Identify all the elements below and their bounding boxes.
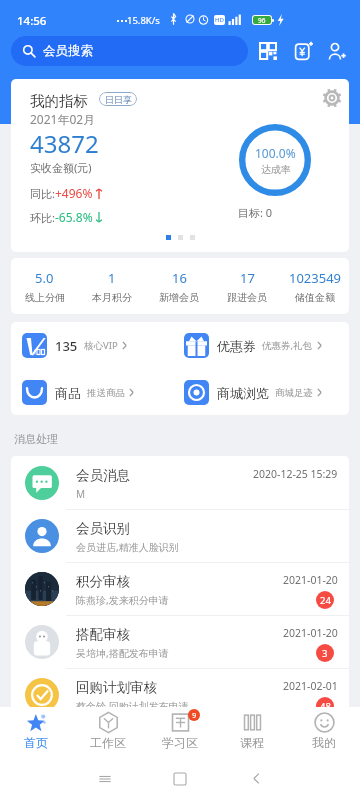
button[interactable]: 会员识别 (11, 509, 349, 562)
staticText: 跟进会员 (227, 291, 267, 304)
staticText: 会员搜索 (43, 43, 93, 59)
button[interactable]: 9 (144, 706, 216, 760)
staticText: 蔡金铃,回购计划发布申请 (76, 699, 189, 708)
staticText: 实收金额(元) (30, 160, 92, 175)
staticText: 2021-02-01 (283, 679, 338, 693)
staticText: 48 (320, 700, 331, 708)
button[interactable]: 17 (213, 258, 281, 314)
staticText: 我的 (312, 735, 336, 750)
staticText: 43872 (30, 127, 99, 160)
button[interactable]: 收款 (288, 35, 320, 67)
button[interactable]: 我的 (288, 706, 360, 760)
staticText: 会员消息 (76, 467, 130, 484)
button[interactable]: 首页 (0, 706, 72, 760)
button[interactable]: 工作区 (72, 706, 144, 760)
staticText: 16 (172, 269, 187, 287)
staticText: M (76, 487, 86, 501)
staticText: 15.8K/s (127, 14, 160, 27)
staticText: 商城足迹 (275, 387, 313, 399)
staticText: 达成率 (261, 163, 291, 176)
staticText: -65.8% (55, 209, 93, 225)
staticText: 课程 (240, 735, 264, 750)
button[interactable]: 优惠券 (184, 322, 344, 369)
staticText: 陈燕珍,发来积分申请 (76, 593, 169, 607)
staticText: 14:56 (17, 13, 47, 29)
staticText: 线上分佣 (25, 291, 65, 304)
staticText: 3 (322, 647, 328, 660)
staticText: 96 (258, 16, 266, 24)
button[interactable]: 1023549 (281, 258, 349, 314)
staticText: 核心VIP (84, 339, 118, 352)
staticText: 我的指标 (30, 92, 88, 110)
staticText: 2021-01-20 (283, 573, 338, 587)
staticText: 1023549 (289, 269, 342, 287)
staticText: 2021年02月 (30, 111, 96, 127)
staticText: 5.0 (35, 269, 54, 287)
button[interactable]: 会员消息 (11, 456, 349, 509)
staticText: 17 (240, 269, 255, 287)
staticText: 9 (192, 710, 197, 720)
staticText: 同比: (30, 186, 55, 201)
button[interactable]: 回购计划审核 (11, 668, 349, 708)
button[interactable]: 5.0 (11, 258, 78, 314)
staticText: 135 (55, 337, 78, 355)
staticText: 推送商品 (87, 387, 125, 399)
staticText: 本月积分 (92, 291, 132, 304)
staticText: 储值金额 (295, 291, 335, 304)
button[interactable]: 最近任务 (98, 772, 112, 786)
staticText: 环比: (30, 210, 55, 225)
button[interactable]: 搭配审核 (11, 615, 349, 668)
button[interactable]: 返回 (250, 772, 263, 785)
staticText: 商城浏览 (217, 385, 269, 401)
button[interactable]: 16 (145, 258, 213, 314)
staticText: +496% (55, 185, 93, 201)
staticText: 会员进店,精准人脸识别 (76, 540, 179, 554)
staticText: 新增会员 (159, 291, 199, 304)
staticText: 100.0% (255, 145, 296, 161)
button[interactable]: 添加会员 (320, 35, 352, 67)
staticText: 1 (108, 269, 116, 287)
staticText: 回购计划审核 (76, 679, 157, 696)
staticText: 学习区 (162, 735, 198, 750)
staticText: 吴培坤,搭配发布申请 (76, 646, 169, 660)
button[interactable]: 会员搜索 (11, 36, 248, 66)
staticText: 24 (320, 594, 331, 607)
button[interactable]: 商城浏览 (184, 369, 344, 415)
staticText: 积分审核 (76, 573, 130, 590)
button[interactable]: 1 (78, 258, 145, 314)
button[interactable]: 积分审核 (11, 562, 349, 615)
staticText: 首页 (24, 735, 48, 750)
staticText: 商品 (55, 385, 81, 401)
button[interactable]: 设置 (322, 88, 342, 108)
button[interactable]: 扫一扫 (252, 35, 284, 67)
staticText: 搭配审核 (76, 626, 130, 643)
staticText: 目标: 0 (238, 205, 273, 220)
button[interactable]: 课程 (216, 706, 288, 760)
button[interactable]: 135 (22, 322, 182, 369)
button[interactable]: 商品 (22, 369, 182, 415)
staticText: 工作区 (90, 735, 126, 750)
staticText: 消息处理 (14, 432, 58, 446)
staticText: 2020-12-25 15:29 (253, 467, 338, 481)
staticText: 会员识别 (76, 520, 130, 537)
staticText: 2021-01-20 (283, 626, 338, 640)
staticText: 日日享 (105, 94, 132, 105)
button[interactable]: 主页 (174, 773, 186, 785)
staticText: 优惠券 (217, 338, 256, 354)
staticText: HD (215, 16, 224, 24)
staticText: 优惠券,礼包 (262, 339, 313, 352)
